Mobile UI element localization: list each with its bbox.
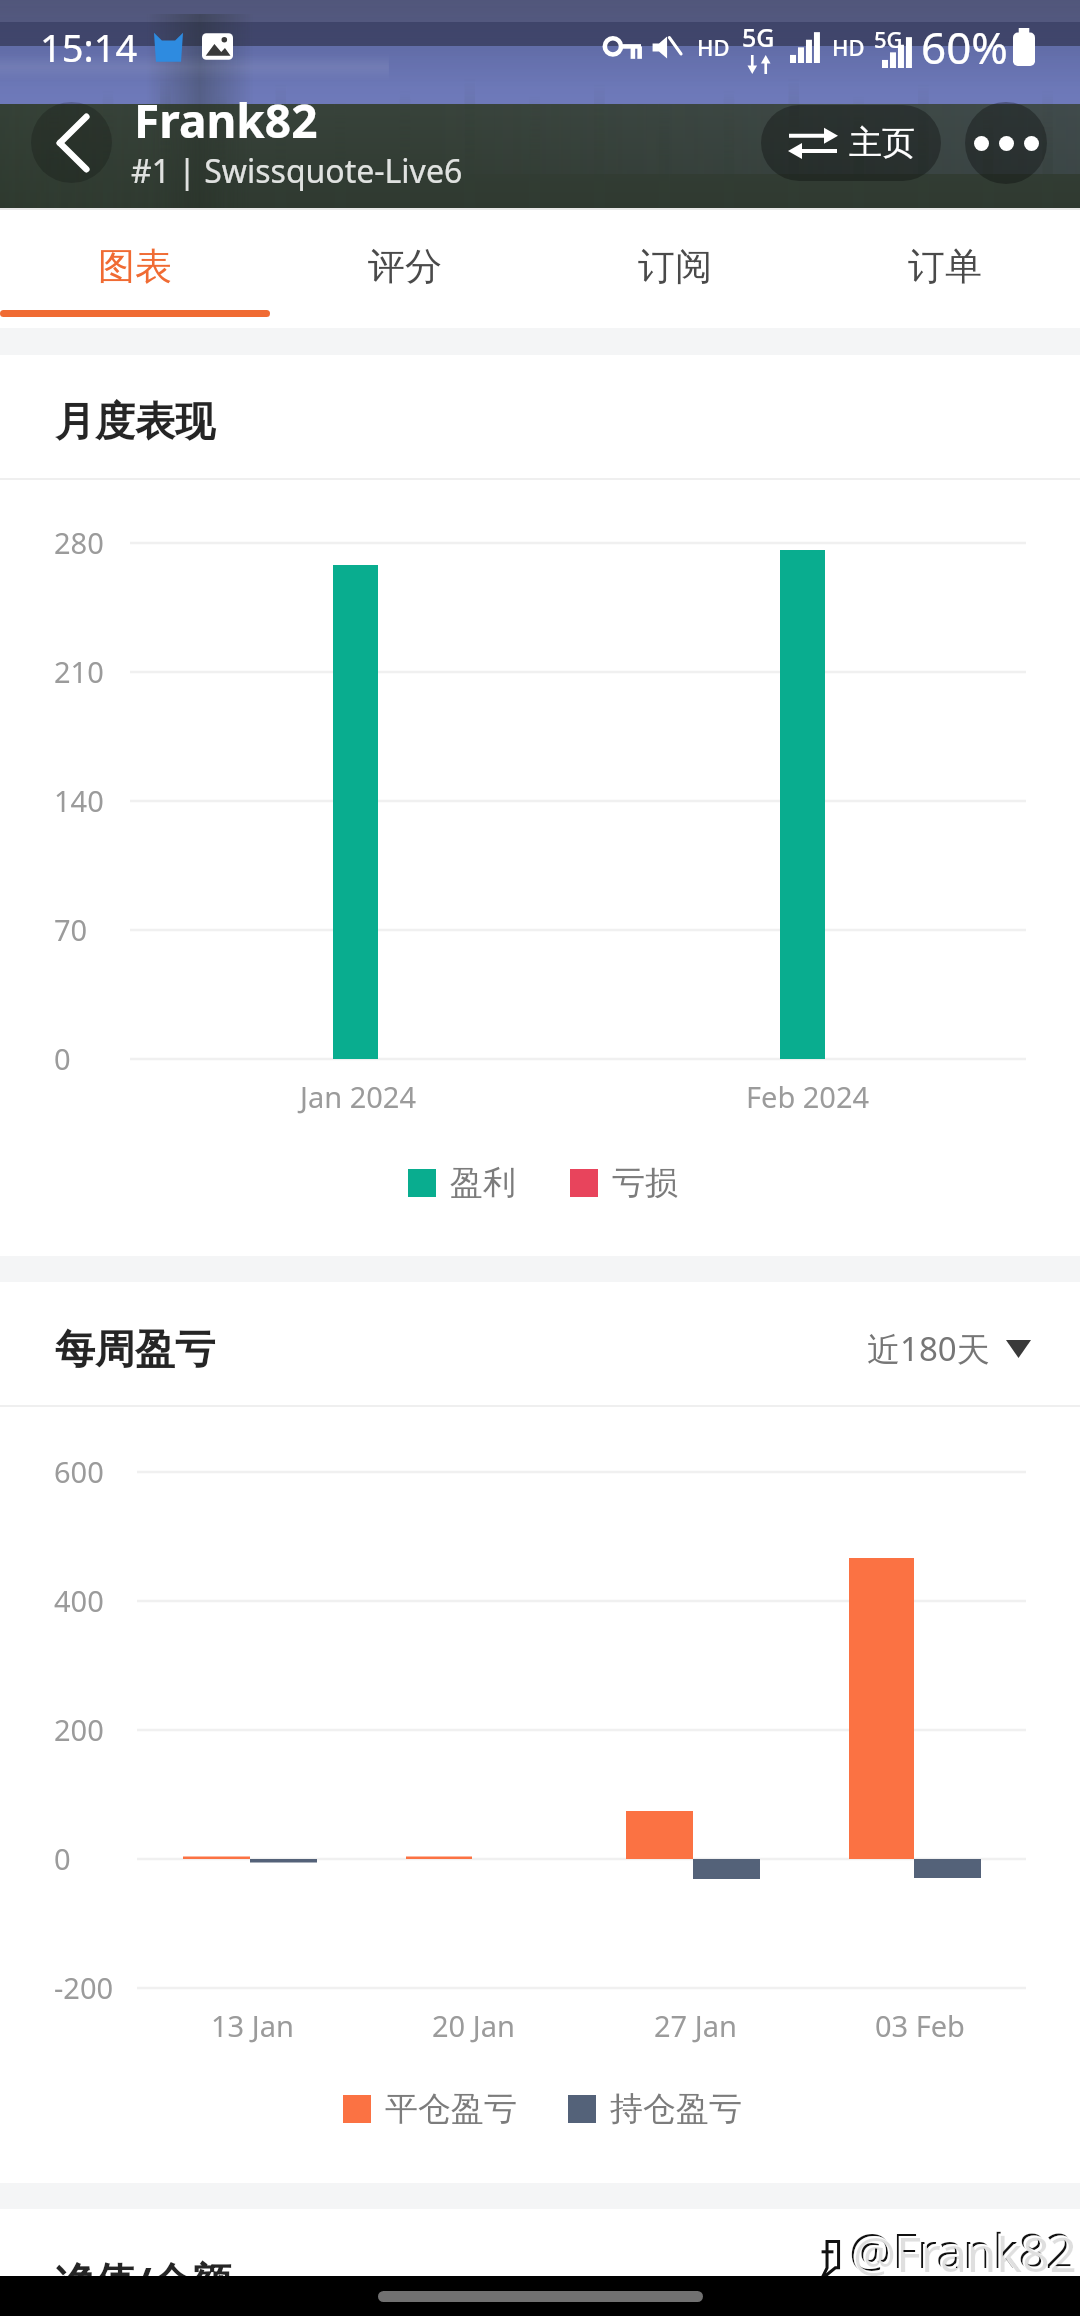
- staticText: 图表: [98, 243, 172, 290]
- staticText: @Frank82: [851, 2219, 1076, 2284]
- staticText: 0: [54, 1039, 71, 1078]
- staticText: HD: [832, 32, 865, 62]
- button[interactable]: 主页: [761, 105, 941, 181]
- staticText: 评分: [368, 243, 442, 290]
- button[interactable]: 订阅: [540, 208, 810, 318]
- button[interactable]: 评分: [270, 208, 540, 318]
- staticText: HD: [697, 32, 730, 62]
- staticText: 15:14: [40, 21, 138, 73]
- button[interactable]: More options: [965, 102, 1047, 184]
- button[interactable]: Back: [31, 102, 112, 183]
- staticText: 净值/余额: [55, 2253, 232, 2308]
- button[interactable]: 订单: [810, 208, 1080, 318]
- staticText: 平仓盈亏: [385, 2088, 517, 2130]
- staticText: 20 Jan: [432, 2006, 515, 2045]
- staticText: 280: [54, 523, 104, 562]
- staticText: Frank82: [134, 89, 318, 152]
- staticText: 400: [54, 1581, 104, 1620]
- staticText: 主页: [849, 122, 915, 164]
- staticText: 03 Feb: [875, 2006, 965, 2045]
- staticText: 27 Jan: [654, 2006, 737, 2045]
- staticText: Jan 2024: [300, 1077, 417, 1116]
- staticText: @Frank82: [849, 2217, 1074, 2282]
- staticText: 140: [54, 781, 104, 820]
- staticText: 210: [54, 652, 104, 691]
- staticText: 持仓盈亏: [610, 2088, 742, 2130]
- staticText: 亏损: [612, 1162, 678, 1204]
- staticText: 月度表现: [55, 396, 215, 446]
- staticText: 每周盈亏: [55, 1324, 215, 1374]
- button[interactable]: 近180天: [867, 1326, 1031, 1371]
- staticText: 订阅: [638, 243, 712, 290]
- staticText: #1 | Swissquote-Live6: [131, 149, 463, 193]
- staticText: 5G: [742, 20, 775, 54]
- staticText: 60%: [921, 17, 1008, 77]
- staticText: 70: [54, 910, 88, 949]
- staticText: 盈利: [450, 1162, 516, 1204]
- staticText: -200: [54, 1968, 114, 2007]
- staticText: @Frank82: [853, 2221, 1078, 2286]
- staticText: 5G: [874, 24, 903, 54]
- staticText: 13 Jan: [211, 2006, 294, 2045]
- staticText: 订单: [908, 243, 982, 290]
- button[interactable]: 图表: [0, 208, 270, 318]
- staticText: 600: [54, 1452, 104, 1491]
- staticText: 200: [54, 1710, 104, 1749]
- staticText: 0: [54, 1839, 71, 1878]
- staticText: Feb 2024: [746, 1077, 870, 1116]
- staticText: 近180天: [867, 1326, 990, 1371]
